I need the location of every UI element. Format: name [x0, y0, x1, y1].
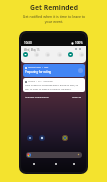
button[interactable]: Recents [71, 161, 76, 166]
staticText: Preparing for rating [25, 70, 52, 74]
button[interactable]: Google • 2h • Reminder [23, 78, 85, 92]
button[interactable]: Clear all [72, 95, 82, 98]
button[interactable]: Toggle [79, 52, 84, 57]
staticText: Get notified when it is time to leave to… [20, 14, 88, 24]
staticText: 100% [75, 41, 83, 45]
button[interactable]: Manage notifications [25, 95, 49, 98]
button[interactable]: Toggle [57, 52, 62, 57]
button[interactable]: Toggle [23, 52, 28, 57]
button[interactable]: App [39, 135, 45, 141]
button[interactable]: App [27, 135, 33, 141]
button[interactable]: Google Maps • now [23, 64, 85, 77]
staticText: Time to leave to scheduled event. Route … [25, 84, 83, 90]
button[interactable]: Search [26, 152, 82, 158]
staticText: Google Maps • now [28, 66, 49, 69]
staticText: Get Reminded [30, 3, 78, 12]
button[interactable]: Toggle [68, 52, 73, 57]
button[interactable]: Toggle [45, 52, 50, 57]
staticText: 10:30 [24, 41, 32, 45]
staticText: Wed, May 15 [24, 48, 40, 52]
button[interactable]: Back [31, 161, 36, 166]
button[interactable]: App [62, 135, 68, 141]
button[interactable]: Home [53, 161, 58, 166]
button[interactable]: Toggle [34, 52, 39, 57]
staticText: Google • 2h • Reminder [28, 80, 54, 83]
